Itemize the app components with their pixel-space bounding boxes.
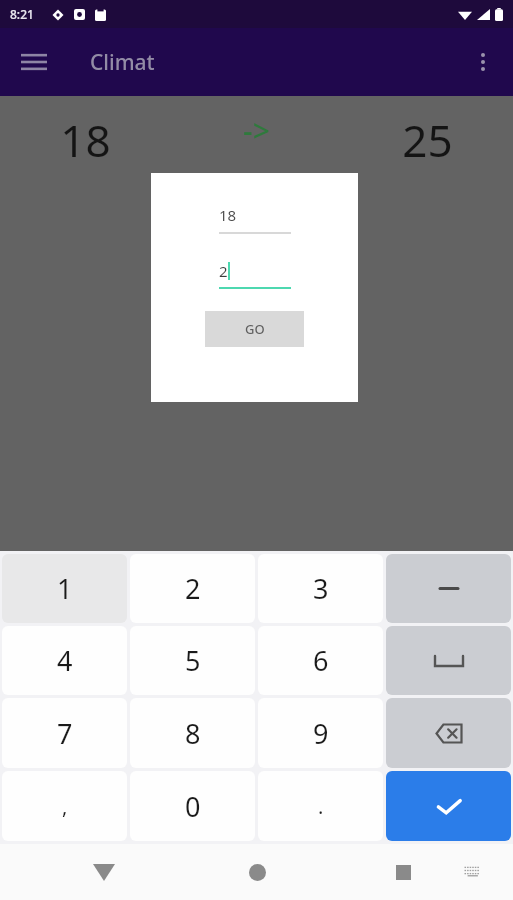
staticText: 3 [313, 570, 329, 607]
staticText: 2 [219, 261, 228, 281]
button[interactable]: 4 [2, 626, 127, 695]
staticText: 4 [57, 642, 73, 679]
button[interactable]: Switch keyboard [453, 852, 493, 892]
staticText: 8 [185, 715, 201, 752]
staticText: 2 [185, 570, 201, 607]
staticText: 7 [57, 715, 73, 752]
button[interactable]: 7 [2, 698, 127, 768]
staticText: 1 [57, 570, 73, 607]
button[interactable]: Recent apps [381, 850, 425, 894]
button[interactable]: 2 [219, 261, 291, 289]
button[interactable]: 9 [258, 698, 383, 768]
button[interactable]: GO [205, 311, 304, 347]
button[interactable]: Home [235, 850, 279, 894]
button[interactable]: 18 [219, 205, 291, 234]
staticText: -> [243, 110, 270, 151]
staticText: GO [245, 320, 265, 338]
staticText: 18 [60, 110, 111, 170]
button[interactable]: 5 [130, 626, 255, 695]
button[interactable]: 6 [258, 626, 383, 695]
staticText: 5 [185, 642, 201, 679]
button[interactable]: 3 [258, 554, 383, 623]
button[interactable]: Backspace [386, 698, 511, 768]
button[interactable]: More options [459, 38, 507, 86]
button[interactable]: 2 [130, 554, 255, 623]
staticText: 0 [185, 788, 201, 825]
staticText: 9 [313, 715, 329, 752]
button[interactable]: 1 [2, 554, 127, 623]
button[interactable]: Minus [386, 554, 511, 623]
button[interactable]: 0 [130, 771, 255, 841]
staticText: Climat [90, 48, 155, 77]
staticText: , [62, 793, 68, 820]
button[interactable]: , [2, 771, 127, 841]
staticText: 18 [219, 205, 237, 225]
button[interactable]: Back [82, 850, 126, 894]
button[interactable]: . [258, 771, 383, 841]
staticText: 8:21 [10, 6, 34, 22]
button[interactable]: Done [386, 771, 511, 841]
staticText: . [318, 793, 324, 820]
button[interactable]: 8 [130, 698, 255, 768]
button[interactable]: Space [386, 626, 511, 695]
staticText: 25 [402, 110, 453, 170]
staticText: 6 [313, 642, 329, 679]
button[interactable]: Open navigation menu [10, 38, 58, 86]
